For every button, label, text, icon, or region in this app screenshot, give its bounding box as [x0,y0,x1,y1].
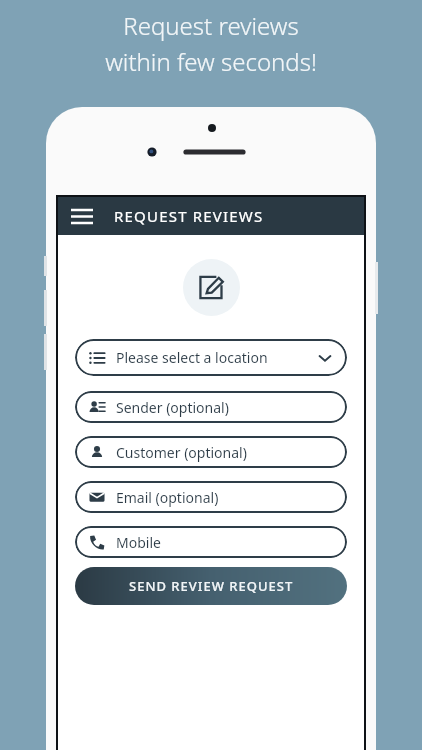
button[interactable]: Mobile [75,526,347,558]
staticText: Sender (optional) [116,398,229,417]
button[interactable]: Email (optional) [75,481,347,513]
button[interactable]: Customer (optional) [75,436,347,468]
staticText: Please select a location [116,348,268,367]
button[interactable]: New review request [183,259,240,316]
staticText: within few seconds! [105,45,317,78]
staticText: Mobile [116,533,161,552]
button[interactable]: Open navigation menu [65,199,99,233]
button[interactable]: Sender (optional) [75,391,347,423]
staticText: Request reviews [123,9,299,42]
button: Open navigation menu [58,197,364,235]
staticText: Customer (optional) [116,443,247,462]
staticText: Email (optional) [116,488,219,507]
button[interactable]: Please select a location [75,339,347,376]
staticText: REQUEST REVIEWS [114,206,264,226]
staticText: SEND REVIEW REQUEST [129,577,294,595]
button[interactable]: SEND REVIEW REQUEST [75,567,347,605]
